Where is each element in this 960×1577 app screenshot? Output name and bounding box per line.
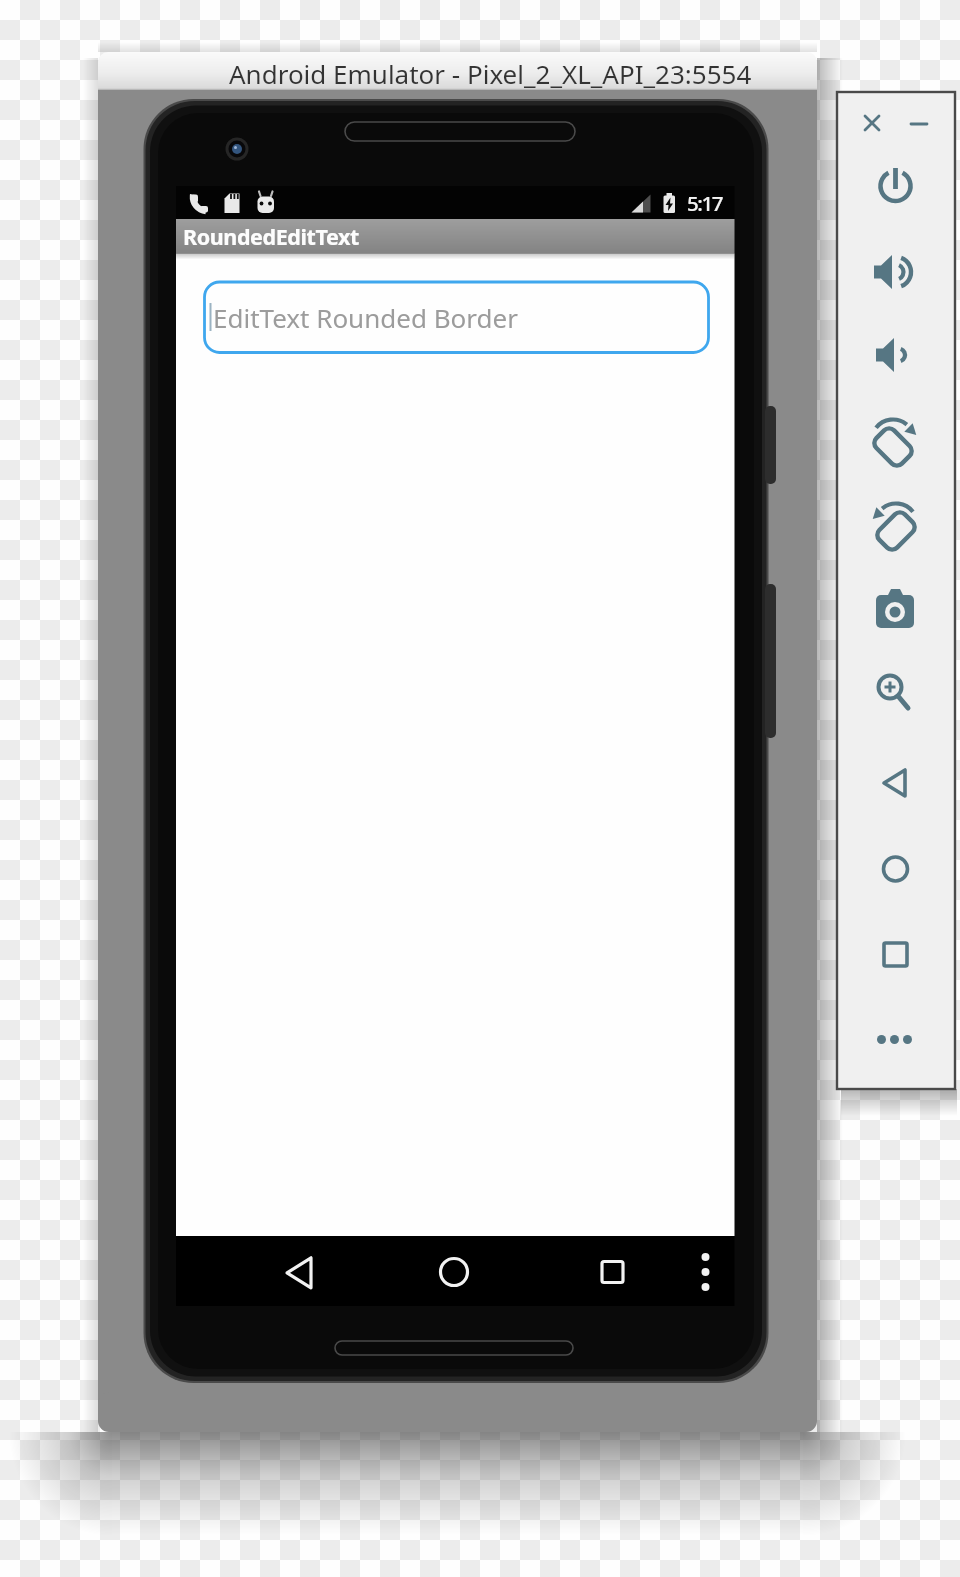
staticText: EditText Rounded Border [213, 300, 518, 335]
button[interactable] [855, 106, 889, 140]
staticText: 5:17 [687, 189, 723, 217]
button[interactable] [868, 1012, 923, 1066]
button[interactable]: EditText Rounded Border [204, 282, 708, 353]
button[interactable] [868, 328, 923, 382]
button[interactable] [868, 666, 923, 720]
button[interactable] [269, 1242, 329, 1302]
staticText: RoundedEditText [183, 222, 359, 251]
button[interactable] [868, 159, 923, 213]
button[interactable] [868, 842, 923, 896]
button[interactable] [868, 584, 923, 638]
button[interactable] [868, 499, 923, 553]
button[interactable] [582, 1242, 642, 1302]
button[interactable] [868, 414, 923, 468]
button[interactable] [868, 927, 923, 981]
button[interactable] [868, 756, 923, 810]
button[interactable] [902, 106, 936, 140]
button[interactable] [868, 245, 923, 299]
staticText: Android Emulator - Pixel_2_XL_API_23:555… [229, 56, 752, 88]
button[interactable] [424, 1242, 484, 1302]
button[interactable] [681, 1242, 731, 1302]
